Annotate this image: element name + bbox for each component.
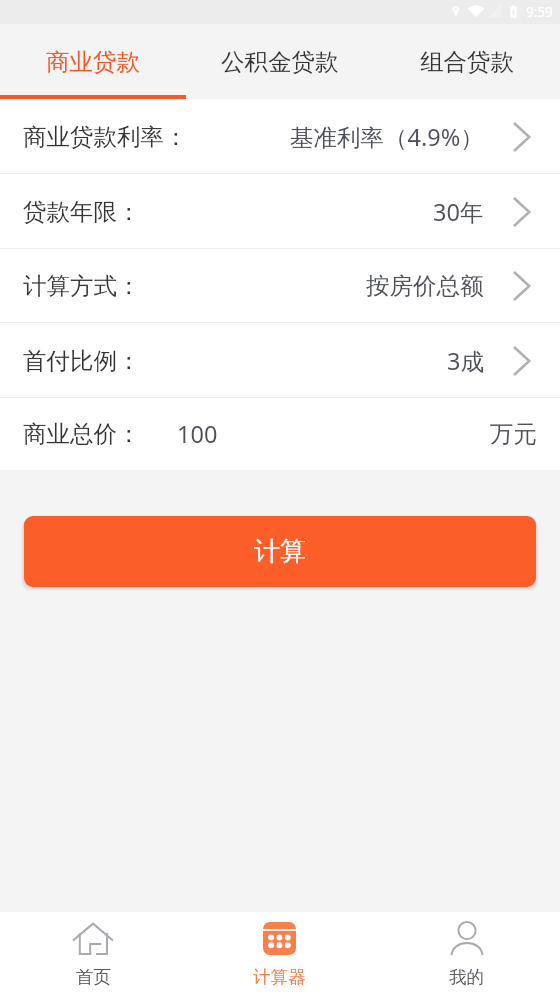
button[interactable]: 贷款年限： <box>0 174 560 249</box>
staticText: 首付比例： <box>23 346 141 376</box>
button[interactable]: 商业贷款利率： <box>0 99 560 174</box>
staticText: 公积金贷款 <box>221 47 339 77</box>
button[interactable]: 商业贷款 <box>0 24 186 99</box>
staticText: 9:59 <box>526 3 553 21</box>
button[interactable]: Profile <box>373 912 560 995</box>
staticText: 商业贷款 <box>46 47 140 77</box>
button[interactable]: 组合贷款 <box>373 24 560 99</box>
staticText: 基准利率（4.9%） <box>290 121 484 153</box>
staticText: 万元 <box>490 419 537 449</box>
staticText: 100 <box>177 418 218 450</box>
button[interactable]: Home <box>0 912 186 995</box>
staticText: 计算 <box>254 535 306 568</box>
staticText: 组合贷款 <box>420 47 514 77</box>
staticText: 计算方式： <box>23 271 141 301</box>
staticText: 商业总价： <box>23 419 141 449</box>
staticText: 按房价总额 <box>366 271 484 301</box>
staticText: 3成 <box>447 345 484 377</box>
staticText: 首页 <box>76 966 111 988</box>
staticText: 我的 <box>449 966 484 988</box>
button[interactable]: 计算 <box>24 516 536 587</box>
button[interactable]: 首付比例： <box>0 323 560 398</box>
staticText: 商业贷款利率： <box>23 122 188 152</box>
button[interactable]: 计算方式： <box>0 249 560 323</box>
button[interactable]: Calculator <box>186 912 373 995</box>
staticText: 计算器 <box>253 966 306 988</box>
button[interactable]: 公积金贷款 <box>186 24 373 99</box>
staticText: 贷款年限： <box>23 197 141 227</box>
staticText: 30年 <box>433 196 484 228</box>
